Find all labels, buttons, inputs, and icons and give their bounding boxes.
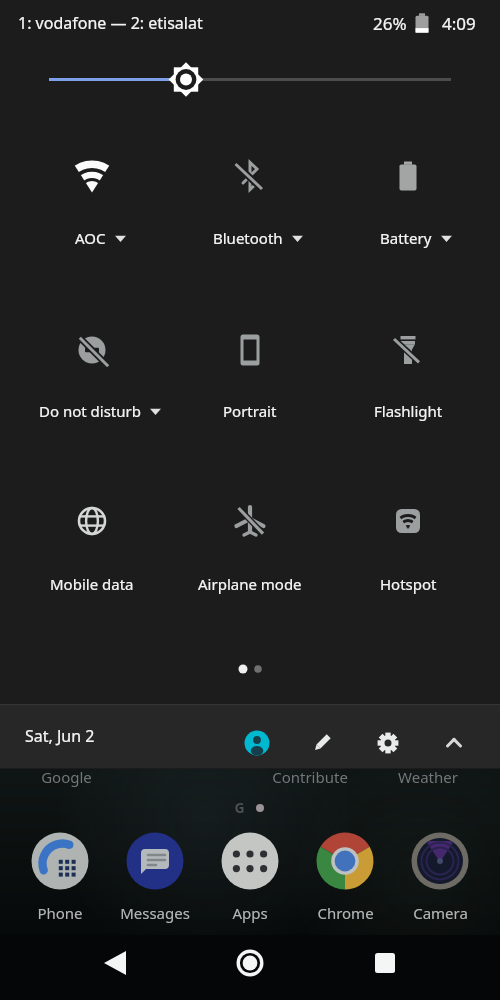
button[interactable] <box>364 719 412 767</box>
staticText: Do not disturb <box>39 401 141 421</box>
staticText: 26% <box>373 12 407 35</box>
button[interactable] <box>314 830 376 892</box>
button[interactable]: AOC <box>13 128 171 254</box>
staticText: Portrait <box>223 401 277 421</box>
staticText: Bluetooth <box>213 228 283 248</box>
button[interactable]: Bluetooth <box>171 128 329 254</box>
staticText: 4:09 <box>442 12 476 35</box>
button[interactable]: Flashlight <box>329 302 487 427</box>
button[interactable]: Mobile data <box>13 473 171 600</box>
button[interactable] <box>226 939 274 987</box>
staticText: Airplane mode <box>198 574 302 594</box>
button[interactable] <box>233 719 281 767</box>
staticText: Phone <box>37 903 83 923</box>
staticText: Apps <box>232 903 268 923</box>
button[interactable]: Sat, Jun 2 <box>25 704 95 768</box>
staticText: Contribute <box>272 767 348 787</box>
button[interactable] <box>29 830 91 892</box>
button[interactable] <box>361 939 409 987</box>
staticText: AOC <box>75 228 106 248</box>
button[interactable]: Battery <box>329 128 487 254</box>
staticText: 1: vodafone — 2: etisalat <box>18 12 203 34</box>
button[interactable] <box>91 939 139 987</box>
staticText: Camera <box>413 903 468 923</box>
staticText: Weather <box>398 767 458 787</box>
button[interactable]: Hotspot <box>329 473 487 600</box>
button[interactable] <box>430 719 478 767</box>
button[interactable] <box>298 719 346 767</box>
button[interactable] <box>36 58 464 100</box>
staticText: Chrome <box>317 903 374 923</box>
button[interactable] <box>219 830 281 892</box>
button[interactable]: Airplane mode <box>171 473 329 600</box>
button[interactable]: Do not disturb <box>13 302 171 427</box>
button[interactable] <box>124 830 186 892</box>
button[interactable]: Portrait <box>171 302 329 427</box>
button[interactable] <box>409 830 471 892</box>
staticText: Messages <box>120 903 190 923</box>
staticText: Sat, Jun 2 <box>25 725 95 747</box>
staticText: G <box>234 798 245 817</box>
staticText: Flashlight <box>374 401 443 421</box>
staticText: Hotspot <box>380 574 437 594</box>
staticText: Mobile data <box>50 574 134 594</box>
staticText: Google <box>41 767 92 787</box>
staticText: Battery <box>380 228 432 248</box>
